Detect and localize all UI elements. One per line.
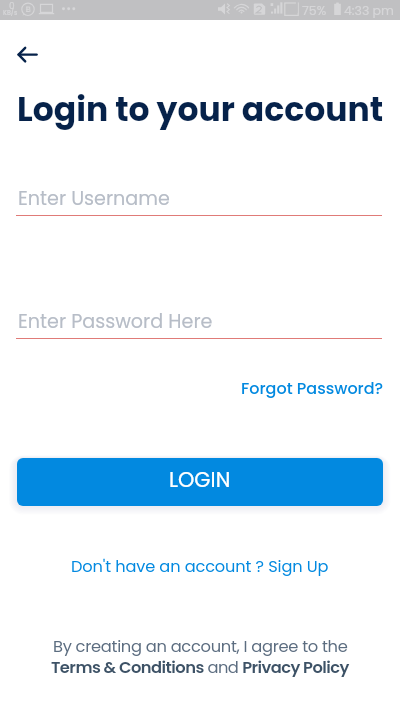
staticText: Enter Password Here: [18, 308, 213, 335]
staticText: KB/s: [3, 8, 18, 17]
button[interactable]: LOGIN: [17, 458, 383, 506]
button[interactable]: Don't have an account ? Sign Up: [61, 550, 339, 583]
staticText: Terms & Conditions and Privacy Policy: [51, 656, 349, 679]
staticText: Enter Username: [18, 185, 170, 212]
staticText: By creating an account, I agree to the: [53, 635, 348, 658]
staticText: Login to your account: [17, 86, 384, 132]
staticText: 4:33 pm: [344, 2, 394, 19]
button[interactable]: Forgot Password?: [233, 373, 392, 403]
staticText: Forgot Password?: [241, 377, 384, 399]
button[interactable]: Enter Username: [16, 185, 400, 215]
button[interactable]: Terms & Conditions and Privacy Policy: [51, 656, 349, 679]
staticText: LOGIN: [169, 465, 231, 494]
staticText: 0: [9, 0, 15, 13]
staticText: 75%: [302, 2, 327, 19]
button[interactable]: Back: [7, 33, 50, 76]
staticText: Don't have an account ? Sign Up: [71, 555, 329, 578]
button[interactable]: Enter Password Here: [16, 308, 400, 338]
